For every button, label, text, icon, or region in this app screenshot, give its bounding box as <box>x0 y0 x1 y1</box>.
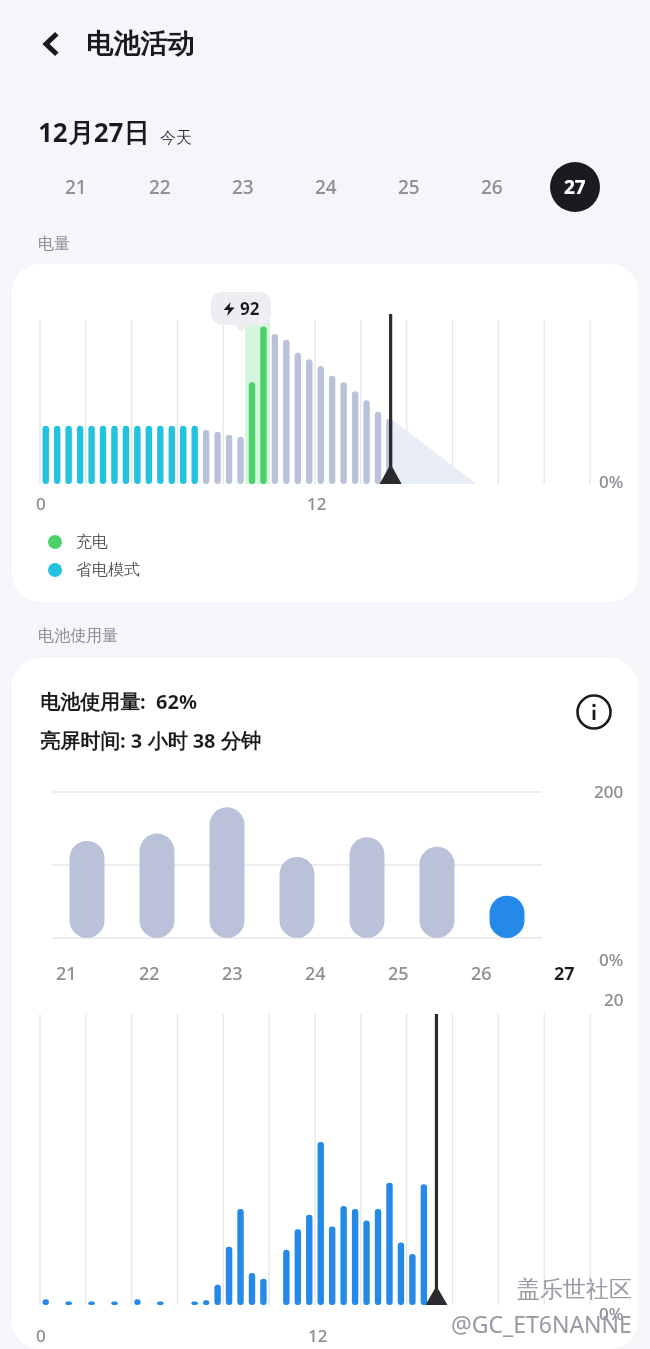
staticText: 25 <box>398 174 420 200</box>
button[interactable]: 25 <box>367 157 450 217</box>
staticText: 0% <box>599 470 624 493</box>
staticText: 24 <box>315 174 337 200</box>
staticText: 0 <box>36 1324 46 1347</box>
button[interactable]: Back <box>30 22 74 66</box>
staticText: 26 <box>471 961 492 986</box>
button[interactable]: 26 <box>450 157 533 217</box>
staticText: 24 <box>305 961 326 986</box>
staticText: 21 <box>56 961 77 986</box>
staticText: 电池使用量: 62% <box>40 688 197 715</box>
button[interactable]: Info <box>570 688 618 736</box>
staticText: 26 <box>481 174 503 200</box>
button[interactable]: 0% <box>12 264 638 602</box>
staticText: 12月27日 <box>38 114 150 150</box>
staticText: 21 <box>65 174 87 200</box>
button[interactable]: 22 <box>118 157 201 217</box>
button[interactable]: 24 <box>284 157 367 217</box>
staticText: 200 <box>594 780 624 803</box>
button[interactable]: 23 <box>201 157 284 217</box>
staticText: 0% <box>599 948 624 971</box>
button[interactable]: 21 <box>34 157 118 217</box>
staticText: 电池使用量 <box>38 626 118 646</box>
staticText: 盖乐世社区 <box>517 1275 632 1304</box>
staticText: 23 <box>222 961 243 986</box>
staticText: 22 <box>139 961 160 986</box>
staticText: 省电模式 <box>76 560 140 580</box>
staticText: 充电 <box>76 532 108 552</box>
staticText: 今天 <box>160 128 192 148</box>
staticText: 电量 <box>38 234 70 254</box>
staticText: 22 <box>149 174 171 200</box>
staticText: @GC_ET6NANNE <box>451 1308 632 1339</box>
staticText: 27 <box>564 174 586 200</box>
button[interactable]: 27 <box>533 157 616 217</box>
staticText: 亮屏时间: 3 小时 38 分钟 <box>40 727 261 754</box>
staticText: 27 <box>554 961 575 986</box>
button[interactable]: 电池使用量: 62% <box>12 658 638 1349</box>
staticText: 12 <box>307 492 327 515</box>
staticText: 20 <box>604 988 624 1011</box>
staticText: 25 <box>388 961 409 986</box>
staticText: 0 <box>36 492 46 515</box>
staticText: 92 <box>240 297 260 320</box>
staticText: 12 <box>308 1324 328 1347</box>
staticText: 0% <box>599 1302 624 1325</box>
staticText: 23 <box>232 174 254 200</box>
staticText: 电池活动 <box>86 27 194 61</box>
